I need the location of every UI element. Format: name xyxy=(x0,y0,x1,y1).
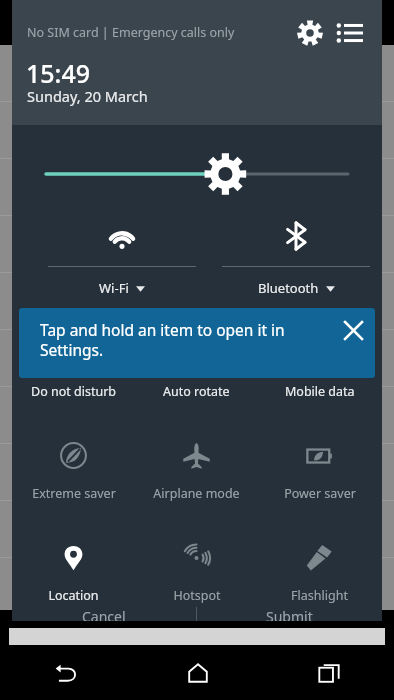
button[interactable]: Settings xyxy=(286,9,334,57)
staticText: Hotspot xyxy=(173,587,221,604)
button[interactable]: Edit quick settings xyxy=(326,9,374,57)
button[interactable]: Home xyxy=(132,645,263,700)
button[interactable]: Back xyxy=(0,645,132,700)
button[interactable]: Location xyxy=(12,527,135,623)
button[interactable]: Bluetooth xyxy=(210,205,382,305)
button[interactable]: Do not disturb xyxy=(12,382,135,400)
staticText: Airplane mode xyxy=(153,485,240,502)
staticText: Bluetooth xyxy=(258,279,319,297)
staticText: Power saver xyxy=(284,485,356,502)
staticText: Mobile data xyxy=(285,383,355,400)
button[interactable]: Extreme saver xyxy=(12,425,135,521)
button[interactable]: Mobile data xyxy=(258,382,381,400)
button[interactable]: Auto rotate xyxy=(135,382,258,400)
button[interactable]: Wi-Fi xyxy=(36,205,208,305)
button[interactable]: Airplane mode xyxy=(135,425,258,521)
button[interactable]: Close xyxy=(331,308,375,352)
staticText: Tap and hold an item to open it in Setti… xyxy=(40,319,308,361)
staticText: No SIM card | Emergency calls only xyxy=(27,24,235,41)
staticText: Auto rotate xyxy=(163,383,230,400)
staticText: Extreme saver xyxy=(32,485,116,502)
staticText: Do not disturb xyxy=(31,383,116,400)
staticText: Flashlight xyxy=(291,587,348,604)
button[interactable]: Cancel xyxy=(12,607,196,621)
button[interactable]: Tap and hold an item to open it in Setti… xyxy=(19,308,375,378)
staticText: Location xyxy=(48,587,99,604)
button[interactable]: Recent apps xyxy=(263,645,394,700)
button[interactable]: Brightness xyxy=(34,150,360,198)
staticText: Submit xyxy=(266,607,313,621)
staticText: Wi-Fi xyxy=(99,279,129,297)
button[interactable]: Flashlight xyxy=(258,527,381,623)
button[interactable]: Power saver xyxy=(258,425,381,521)
button[interactable]: Submit xyxy=(197,607,381,621)
staticText: Sunday, 20 March xyxy=(27,86,148,106)
staticText: 15:49 xyxy=(26,56,91,90)
staticText: Cancel xyxy=(82,607,126,621)
button[interactable]: Hotspot xyxy=(135,527,258,623)
